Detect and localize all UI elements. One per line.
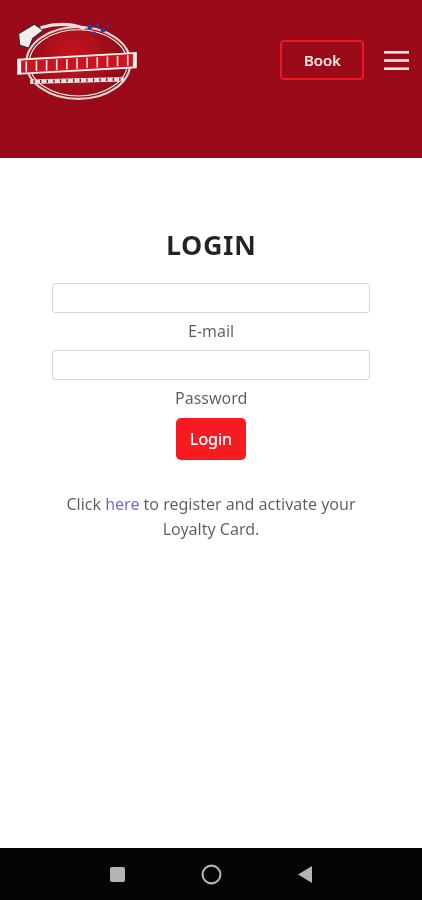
button[interactable]: E-mail input [52,283,370,313]
button[interactable]: Red Carpet Auto Spa Limited logo [12,18,142,106]
button[interactable]: Password input [52,350,370,380]
button[interactable]: Back [278,848,332,900]
staticText: E-mail [188,320,235,342]
staticText: LOGIN [166,226,257,263]
button[interactable]: Login [176,418,246,460]
button[interactable]: Book [280,40,364,80]
button[interactable]: Recent apps [90,848,144,900]
staticText: Password [175,387,248,409]
staticText: Login [190,428,232,450]
button[interactable]: Click here to register and activate your… [46,493,376,539]
staticText: Click here to register and activate your… [46,493,376,539]
staticText: Book [304,50,341,70]
button[interactable]: Menu [378,42,414,78]
button[interactable]: Home [184,848,238,900]
